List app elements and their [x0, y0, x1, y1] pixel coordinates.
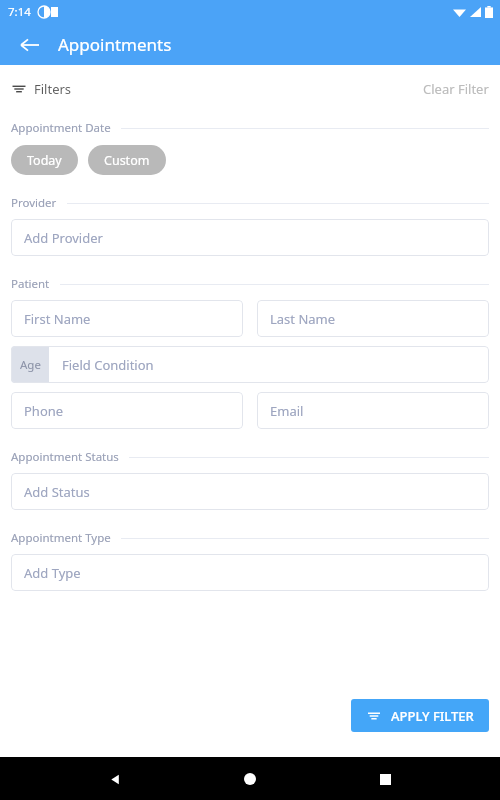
staticText: Field Condition: [62, 356, 154, 374]
staticText: Appointment Date: [11, 120, 111, 136]
staticText: Appointments: [58, 33, 172, 56]
button[interactable]: APPLY FILTER: [351, 699, 489, 732]
staticText: Clear Filter: [423, 80, 489, 98]
button[interactable]: Back: [16, 31, 44, 59]
button[interactable]: Filters: [11, 80, 72, 98]
staticText: Custom: [104, 152, 150, 169]
staticText: Filters: [34, 80, 72, 98]
staticText: Add Status: [24, 483, 90, 501]
staticText: Last Name: [270, 310, 336, 328]
staticText: Appointment Status: [11, 449, 119, 465]
staticText: APPLY FILTER: [391, 707, 474, 725]
button[interactable]: Email: [257, 392, 489, 429]
staticText: Today: [27, 152, 62, 169]
staticText: 7:14: [8, 4, 31, 20]
staticText: Appointment Type: [11, 530, 111, 546]
staticText: Phone: [24, 402, 64, 420]
button[interactable]: Today: [11, 145, 78, 175]
button[interactable]: Add Type: [11, 554, 489, 591]
button[interactable]: Age: [11, 346, 489, 383]
button[interactable]: Add Status: [11, 473, 489, 510]
staticText: Add Provider: [24, 229, 103, 247]
staticText: Age: [20, 357, 41, 373]
button[interactable]: Last Name: [257, 300, 489, 337]
button[interactable]: Phone: [11, 392, 243, 429]
button[interactable]: First Name: [11, 300, 243, 337]
staticText: Add Type: [24, 564, 81, 582]
button[interactable]: Back: [95, 759, 135, 799]
staticText: Email: [270, 402, 304, 420]
staticText: Provider: [11, 195, 57, 211]
button[interactable]: Custom: [88, 145, 166, 175]
button[interactable]: Clear Filter: [423, 80, 489, 98]
button[interactable]: Add Provider: [11, 219, 489, 256]
button[interactable]: Recent apps: [365, 759, 405, 799]
staticText: Patient: [11, 276, 50, 292]
button[interactable]: Home: [230, 759, 270, 799]
staticText: First Name: [24, 310, 91, 328]
